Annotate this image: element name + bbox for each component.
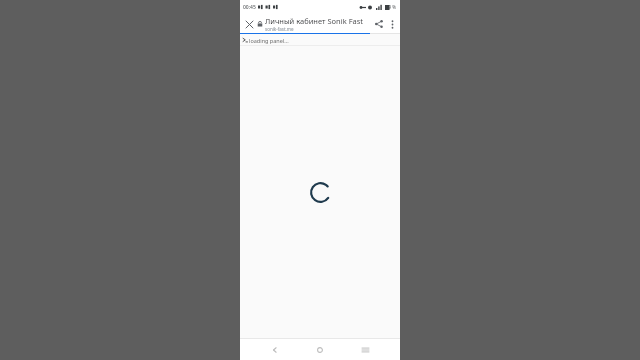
button[interactable]: Share bbox=[372, 17, 386, 31]
staticText: loading panel... bbox=[249, 37, 289, 44]
staticText: 00:45 bbox=[243, 4, 256, 11]
button[interactable]: Личный кабинет Sonik Fast bbox=[265, 16, 370, 32]
staticText: sonik-fast.me bbox=[265, 26, 294, 32]
button[interactable]: Recent apps bbox=[355, 340, 375, 360]
button[interactable]: Close bbox=[242, 17, 256, 31]
button[interactable]: Home bbox=[310, 340, 330, 360]
button[interactable]: More options bbox=[386, 18, 398, 30]
button[interactable]: Back bbox=[265, 340, 285, 360]
staticText: Личный кабинет Sonik Fast bbox=[265, 16, 364, 26]
staticText: 79 % bbox=[386, 4, 397, 10]
